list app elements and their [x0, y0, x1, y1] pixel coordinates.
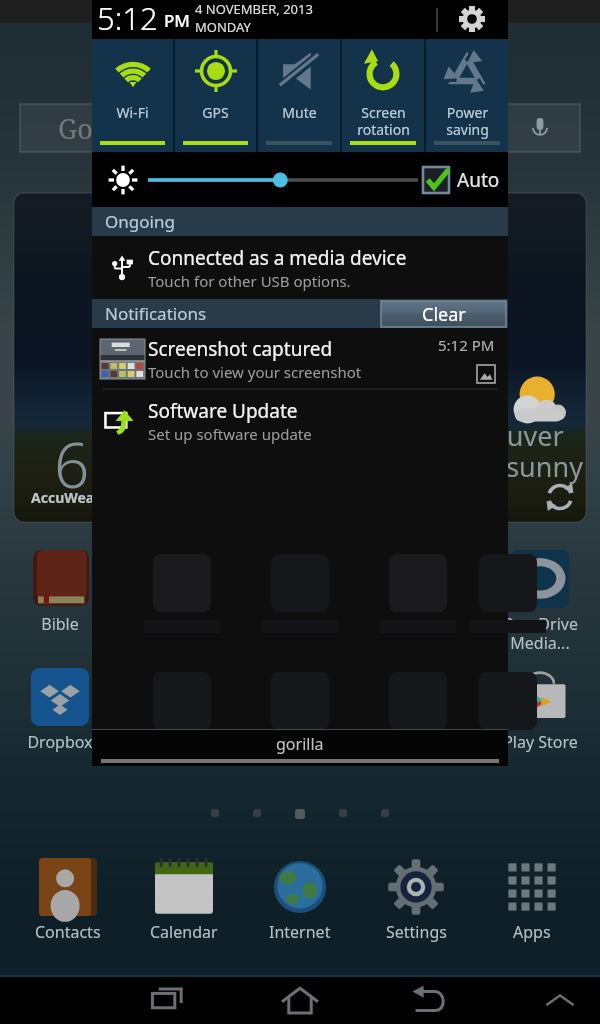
staticText: gorilla	[276, 733, 324, 755]
button[interactable]: Software Update	[92, 390, 508, 452]
staticText: Clear	[422, 302, 466, 327]
staticText: Power saving	[446, 103, 489, 139]
staticText: Connected as a media device	[148, 245, 407, 271]
button[interactable]: Connected as a media device	[92, 236, 508, 299]
button[interactable]: Screen rotation	[342, 39, 424, 152]
button[interactable]: Play Store	[480, 668, 600, 753]
staticText: Auto	[457, 167, 500, 193]
button[interactable]: Clear	[381, 301, 506, 327]
button[interactable]: OverDrive Media...	[480, 550, 600, 654]
staticText: 5:12	[97, 0, 158, 36]
button[interactable]: Apps	[474, 858, 590, 943]
button[interactable]: Auto	[423, 167, 500, 193]
staticText: 5:12 PM	[438, 335, 495, 355]
staticText: °c	[102, 425, 139, 479]
button[interactable]: Dropbox	[0, 668, 120, 753]
staticText: Vancouver	[430, 417, 564, 454]
staticText: Partly sunny	[426, 448, 583, 485]
staticText: 6	[54, 422, 90, 506]
staticText: Software Update	[148, 398, 298, 424]
button[interactable]: Home	[254, 977, 346, 1024]
staticText: OverDrive Media...	[502, 613, 578, 654]
button[interactable]: Contacts	[10, 858, 126, 943]
staticText: Apps	[513, 921, 551, 943]
staticText: Notifications	[105, 302, 207, 325]
staticText: Play Store	[503, 731, 578, 753]
staticText: Bible	[41, 613, 79, 635]
staticText: 4 NOVEMBER, 2013	[195, 0, 313, 18]
button[interactable]: Calendar	[126, 858, 242, 943]
button[interactable]: GPS	[175, 39, 256, 152]
staticText: Ongoing	[105, 210, 175, 233]
button[interactable]: Settings	[459, 6, 485, 32]
staticText: Internet	[269, 921, 331, 943]
button[interactable]: Wi-Fi	[92, 39, 173, 152]
staticText: Touch for other USB options.	[148, 271, 351, 291]
staticText: GPS	[202, 103, 229, 122]
staticText: Touch to view your screenshot	[148, 362, 362, 382]
button[interactable]: Power saving	[426, 39, 508, 152]
staticText: Set up software update	[148, 424, 312, 444]
staticText: PM	[164, 9, 190, 32]
button[interactable]: Recent apps	[124, 977, 216, 1024]
staticText: MONDAY	[195, 18, 251, 36]
staticText: AccuWeather.com	[31, 488, 156, 507]
button[interactable]: gorilla	[92, 729, 508, 766]
button[interactable]: Mute	[258, 39, 340, 152]
staticText: Screen rotation	[357, 103, 410, 139]
staticText: Calendar	[150, 921, 218, 943]
button[interactable]: Bible	[0, 550, 120, 635]
button[interactable]: Screenshot captured	[92, 328, 508, 390]
staticText: Contacts	[35, 921, 101, 943]
button[interactable]: Back	[384, 977, 476, 1024]
button[interactable]	[148, 169, 418, 191]
button[interactable]: Hide keyboard	[514, 977, 600, 1024]
staticText: Wi-Fi	[116, 103, 149, 122]
staticText: Settings	[386, 921, 447, 943]
button[interactable]: Internet	[242, 858, 358, 943]
button[interactable]: Settings	[358, 858, 474, 943]
staticText: Screenshot captured	[148, 336, 333, 362]
staticText: Google	[58, 110, 146, 147]
button[interactable]: Google	[20, 104, 580, 152]
staticText: Mute	[282, 103, 317, 122]
staticText: Dropbox	[27, 731, 93, 753]
